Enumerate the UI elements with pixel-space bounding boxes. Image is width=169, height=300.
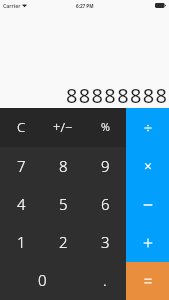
button[interactable]: divide bbox=[126, 108, 169, 147]
button[interactable]: 5 bbox=[42, 186, 84, 224]
staticText: 0 bbox=[38, 270, 47, 290]
staticText: 1 bbox=[17, 232, 26, 252]
staticText: 4 bbox=[17, 194, 26, 214]
staticText: 3 bbox=[101, 232, 110, 252]
button[interactable]: . bbox=[84, 262, 126, 300]
staticText: 7 bbox=[17, 156, 26, 176]
button[interactable]: 8 bbox=[42, 147, 84, 186]
button[interactable]: 7 bbox=[0, 147, 42, 186]
staticText: 8 bbox=[59, 156, 68, 176]
button[interactable]: 2 bbox=[42, 224, 84, 262]
button[interactable]: plus bbox=[126, 224, 169, 262]
staticText: % bbox=[101, 119, 110, 134]
button[interactable]: 6 bbox=[84, 186, 126, 224]
button[interactable]: % bbox=[84, 108, 126, 147]
button[interactable]: 3 bbox=[84, 224, 126, 262]
staticText: 5 bbox=[59, 194, 68, 214]
staticText: 2 bbox=[59, 232, 68, 252]
staticText: 88888888 bbox=[66, 82, 169, 109]
staticText: +/− bbox=[53, 118, 73, 136]
button[interactable]: equals bbox=[126, 262, 169, 300]
button[interactable]: 9 bbox=[84, 147, 126, 186]
staticText: . bbox=[103, 270, 107, 290]
staticText: 6:27 PM bbox=[76, 3, 94, 9]
button[interactable]: 4 bbox=[0, 186, 42, 224]
button[interactable]: C bbox=[0, 108, 42, 147]
staticText: Carrier bbox=[3, 2, 21, 9]
button[interactable]: 1 bbox=[0, 224, 42, 262]
button[interactable]: minus bbox=[126, 186, 169, 224]
staticText: C bbox=[17, 118, 26, 136]
staticText: 9 bbox=[101, 156, 110, 176]
button[interactable]: +/− bbox=[42, 108, 84, 147]
button[interactable]: times bbox=[126, 147, 169, 186]
button[interactable]: 0 bbox=[0, 262, 84, 300]
staticText: 6 bbox=[101, 194, 110, 214]
